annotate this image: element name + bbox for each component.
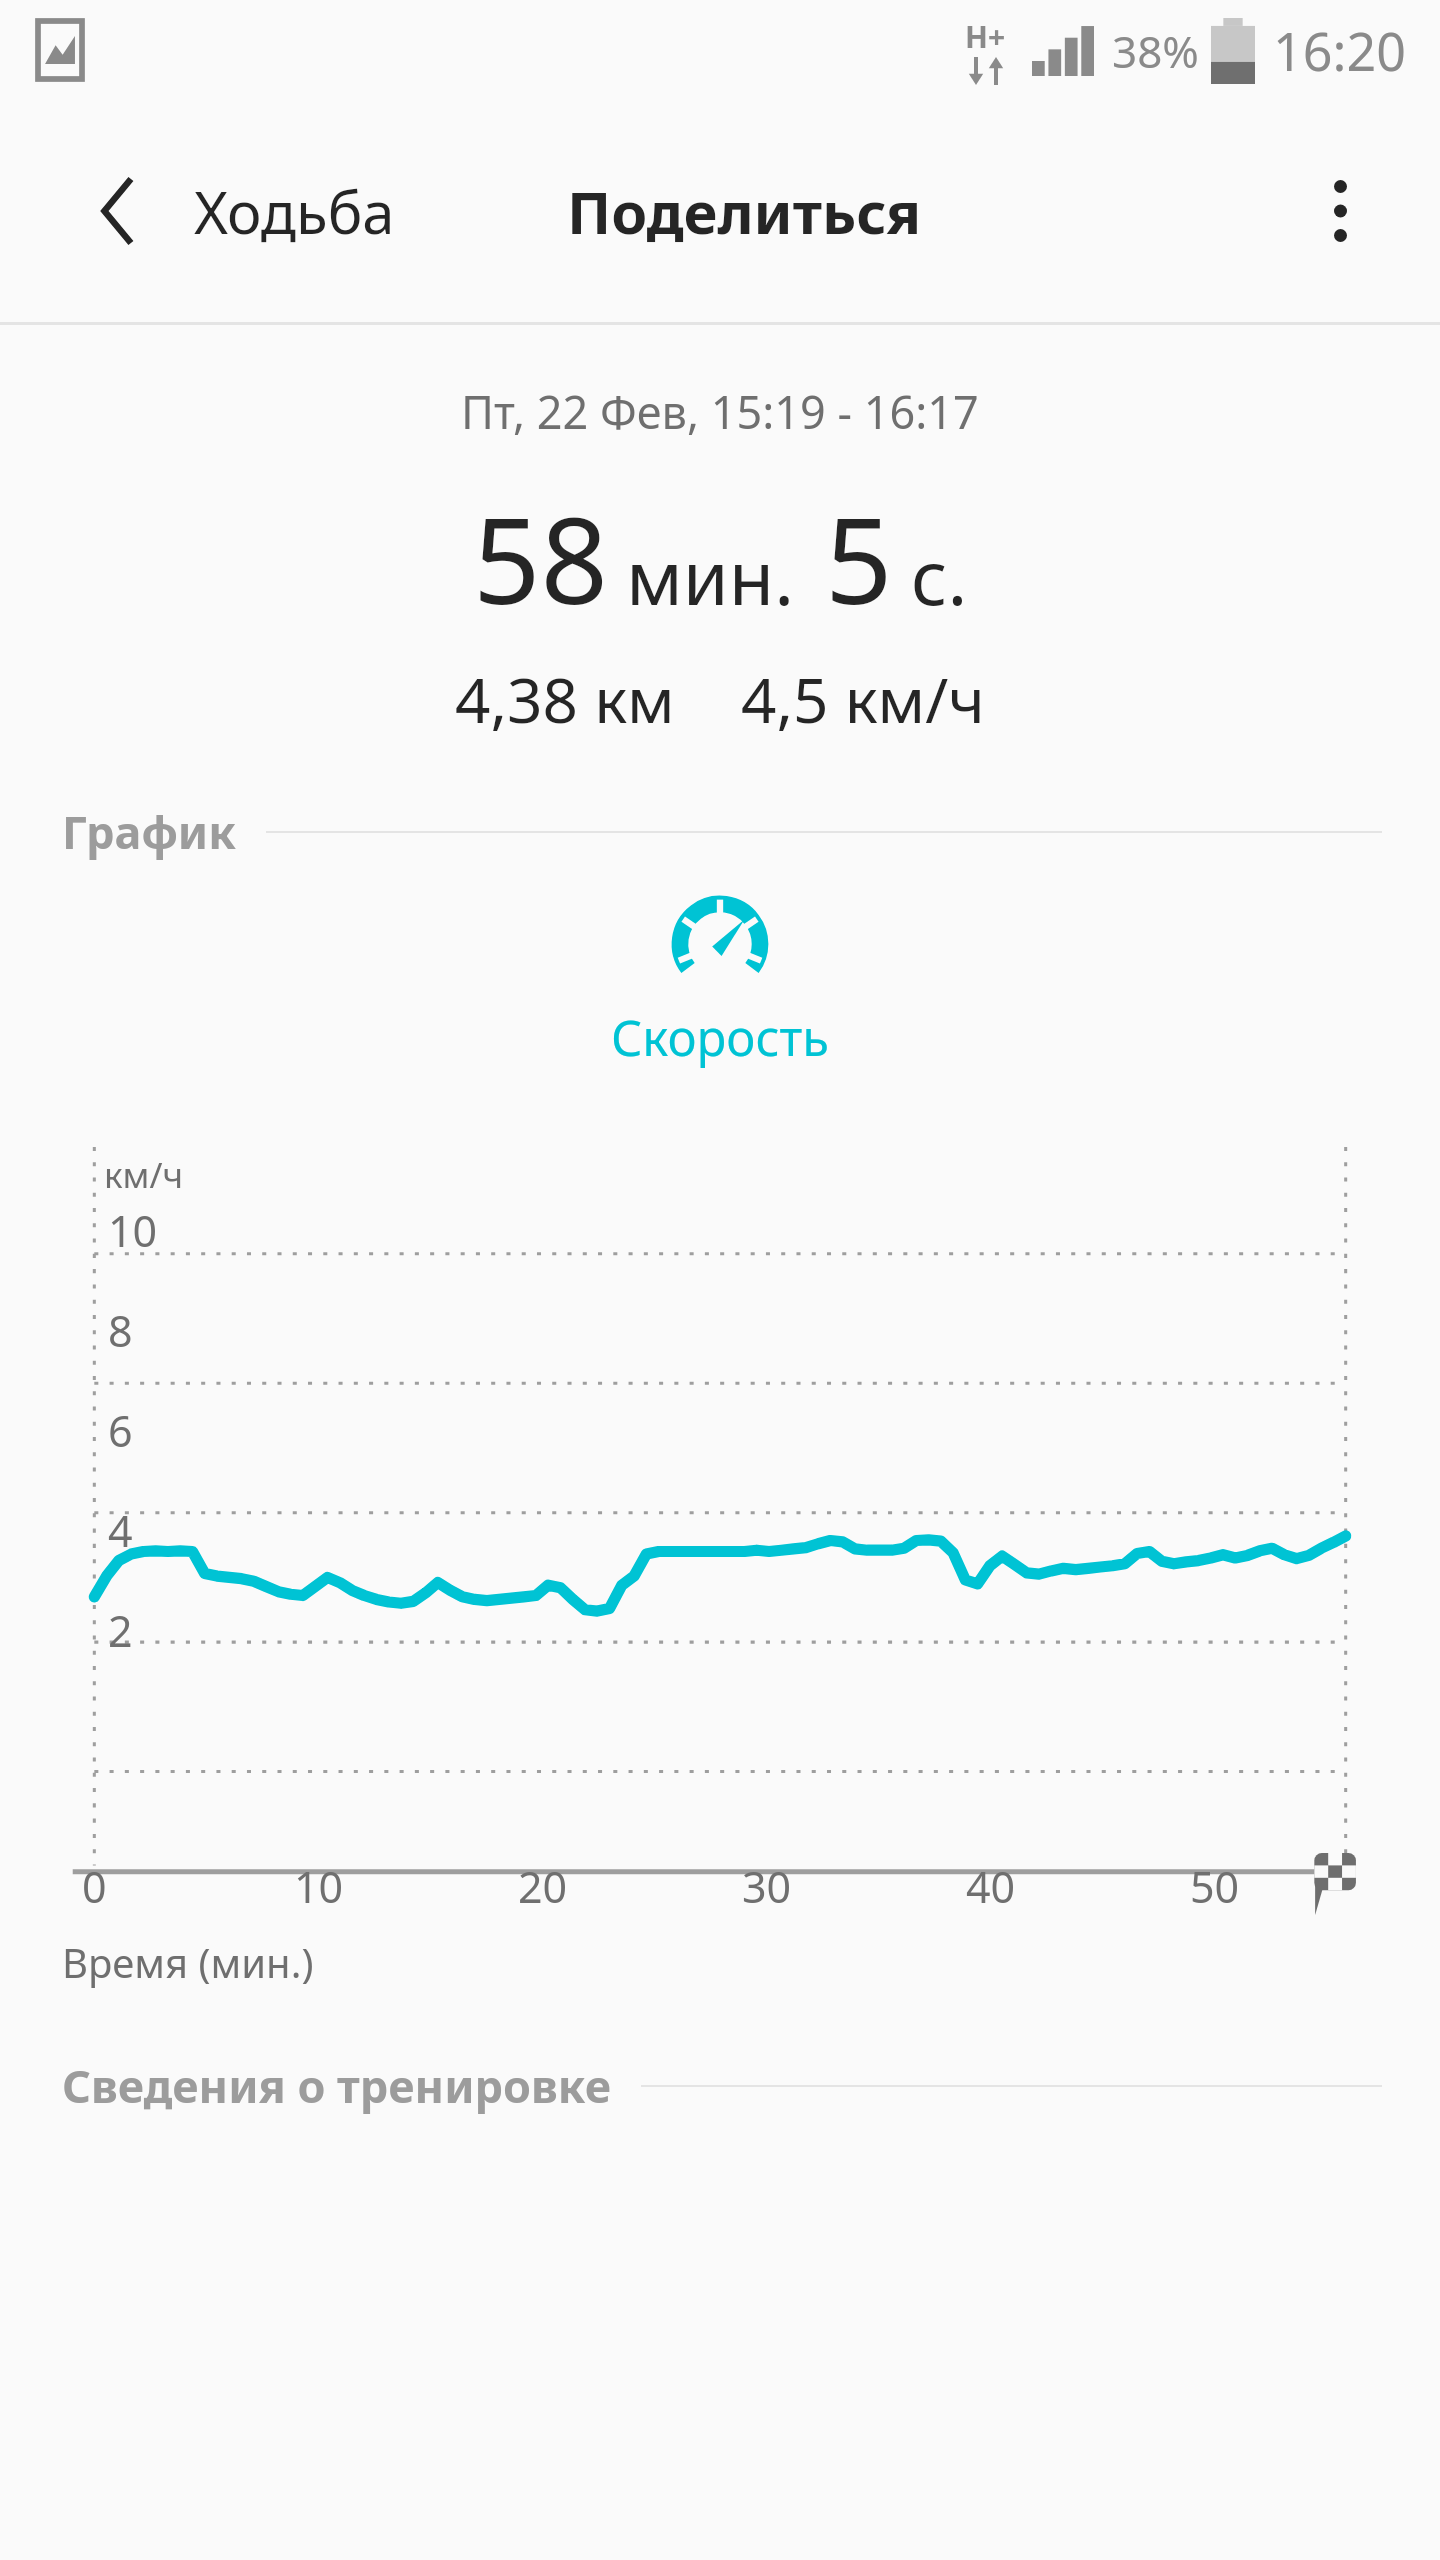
staticText: Время (мин.) (62, 1935, 314, 1989)
other: Скорость (668, 892, 772, 996)
staticText: км/ч (104, 1151, 184, 1199)
staticText: 40 (966, 1857, 1016, 1916)
staticText: 6 (108, 1401, 133, 1460)
staticText: 2 (108, 1601, 133, 1660)
staticText: 4,38 км (455, 657, 675, 741)
staticText: 8 (108, 1301, 133, 1360)
button[interactable]: Дополнительно (1290, 161, 1390, 261)
staticText: 50 (1190, 1857, 1240, 1916)
staticText: Сведения о тренировке (62, 2055, 611, 2116)
button[interactable]: Скорость (0, 892, 1440, 1071)
staticText: График (62, 801, 236, 862)
staticText: Пт, 22 Фев, 15:19 - 16:17 (461, 381, 979, 442)
button[interactable]: Поделиться (551, 156, 938, 267)
staticText: 16:20 (1273, 15, 1406, 86)
staticText: 5 (825, 478, 893, 639)
button[interactable]: Ходьба (194, 156, 395, 267)
button[interactable]: Назад (70, 163, 166, 259)
staticText: с. (911, 526, 968, 627)
staticText: 0 (82, 1857, 107, 1916)
staticText: 10 (294, 1857, 344, 1916)
staticText: мин. (626, 526, 795, 627)
staticText: H+ (965, 16, 1006, 57)
staticText: 30 (742, 1857, 792, 1916)
other: Финиш (1306, 1853, 1358, 1915)
staticText: 4 (108, 1501, 133, 1560)
staticText: Скорость (611, 1004, 830, 1071)
staticText: 10 (108, 1201, 158, 1260)
staticText: 58 (473, 478, 608, 639)
staticText: 4,5 км/ч (741, 657, 985, 741)
staticText: 38% (1112, 21, 1199, 81)
staticText: 20 (518, 1857, 568, 1916)
